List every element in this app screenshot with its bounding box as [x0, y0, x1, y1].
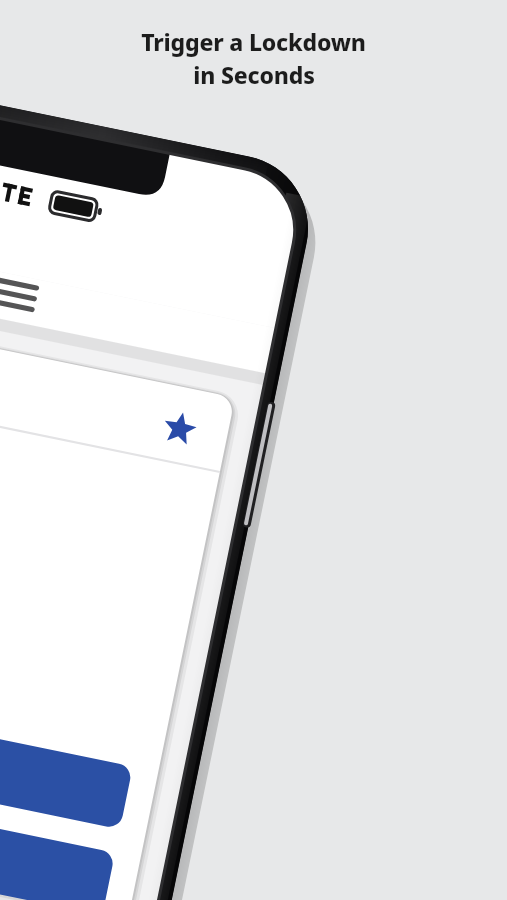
- staticText: in Seconds: [193, 59, 315, 90]
- staticText: Trigger a Lockdown: [141, 26, 366, 57]
